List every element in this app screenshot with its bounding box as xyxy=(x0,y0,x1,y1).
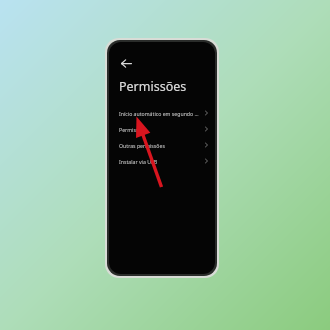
staticText: Permissões xyxy=(119,78,187,95)
button[interactable]: Instalar via USB xyxy=(109,153,215,169)
button[interactable]: Outras permissões xyxy=(109,137,215,153)
staticText: Início automático em segundo plano xyxy=(119,110,201,117)
staticText: Permissões xyxy=(119,126,201,133)
button[interactable]: Permissões xyxy=(109,121,215,137)
staticText: Instalar via USB xyxy=(119,158,201,165)
staticText: Outras permissões xyxy=(119,142,201,149)
button[interactable]: Início automático em segundo plano xyxy=(109,105,215,121)
button[interactable]: Back xyxy=(117,54,135,72)
